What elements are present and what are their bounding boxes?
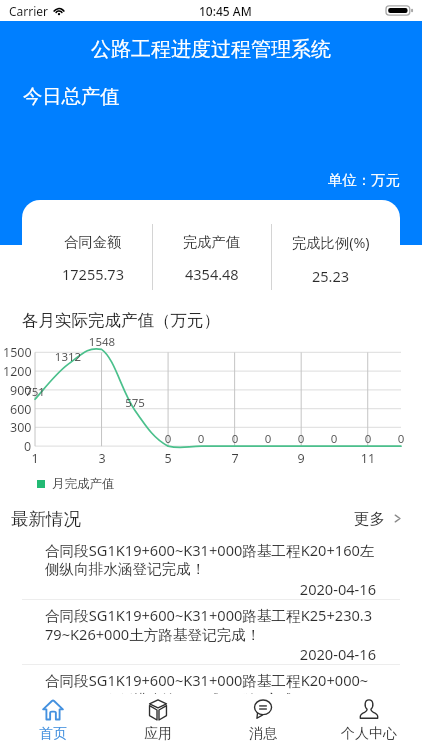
- staticText: 个人中心: [341, 725, 397, 743]
- button[interactable]: 首页: [0, 694, 105, 750]
- staticText: 0: [314, 431, 354, 447]
- button[interactable]: 最新情况: [0, 502, 422, 535]
- staticText: 600: [10, 401, 32, 418]
- staticText: 首页: [39, 725, 67, 743]
- staticText: 25.23: [312, 266, 350, 286]
- staticText: 单位：万元: [328, 171, 400, 189]
- staticText: 7: [220, 450, 250, 467]
- staticText: 300: [10, 419, 32, 436]
- staticText: 1200: [3, 363, 32, 380]
- staticText: 0: [215, 431, 255, 447]
- staticText: 2020-04-16: [45, 579, 376, 599]
- staticText: 2020-04-16: [45, 709, 376, 729]
- staticText: 完成产值: [183, 233, 241, 251]
- staticText: 900: [10, 382, 32, 399]
- staticText: 消息: [249, 725, 277, 743]
- staticText: 今日总产值: [23, 84, 120, 108]
- staticText: 3: [87, 450, 117, 467]
- staticText: 17255.73: [62, 264, 124, 284]
- staticText: 4354.48: [185, 264, 239, 284]
- button[interactable]: 合同段SG1K19+600~K31+000路基工程K20+000~ K20+47…: [0, 665, 422, 730]
- staticText: 合同金额: [64, 233, 122, 251]
- staticText: 575: [115, 395, 155, 411]
- staticText: 0: [248, 431, 288, 447]
- staticText: Carrier: [9, 3, 49, 19]
- staticText: 1548: [82, 334, 122, 350]
- staticText: 1312: [48, 349, 88, 365]
- button[interactable]: 个人中心: [316, 694, 422, 750]
- staticText: 0: [181, 431, 221, 447]
- staticText: 各月实际完成产值（万元）: [22, 310, 220, 331]
- staticText: 0: [24, 438, 32, 455]
- button[interactable]: 消息: [210, 694, 316, 750]
- staticText: 月完成产值: [52, 476, 115, 492]
- staticText: 2020-04-16: [45, 644, 376, 664]
- staticText: 应用: [144, 725, 172, 743]
- staticText: 更多: [354, 509, 385, 529]
- staticText: 0: [348, 431, 388, 447]
- staticText: 1500: [3, 344, 32, 361]
- staticText: 合同段SG1K19+600~K31+000路基工程K20+000~ K20+47…: [45, 670, 369, 709]
- staticText: 0: [148, 431, 188, 447]
- staticText: 0: [281, 431, 321, 447]
- staticText: 最新情况: [11, 508, 81, 530]
- staticText: 11: [353, 450, 383, 467]
- staticText: 合同段SG1K19+600~K31+000路基工程K20+160左 侧纵向排水涵…: [45, 540, 375, 579]
- staticText: 751: [15, 384, 55, 400]
- staticText: 公路工程进度过程管理系统: [0, 37, 422, 62]
- staticText: 0: [381, 431, 421, 447]
- staticText: 1: [20, 450, 50, 467]
- staticText: 合同段SG1K19+600~K31+000路基工程K25+230.3 79~K2…: [45, 605, 373, 644]
- staticText: 10:45 AM: [199, 3, 252, 19]
- button[interactable]: 合同段SG1K19+600~K31+000路基工程K20+160左 侧纵向排水涵…: [0, 535, 422, 600]
- staticText: 完成比例(%): [292, 233, 370, 253]
- staticText: 9: [286, 450, 316, 467]
- staticText: 5: [153, 450, 183, 467]
- button[interactable]: 应用: [105, 694, 210, 750]
- button[interactable]: 合同段SG1K19+600~K31+000路基工程K25+230.3 79~K2…: [0, 600, 422, 665]
